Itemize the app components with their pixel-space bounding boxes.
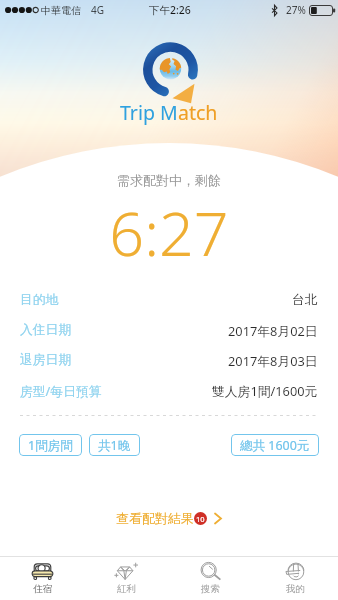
staticText: 房型/每日預算: [20, 382, 102, 399]
staticText: 2017年8月03日: [228, 352, 318, 369]
staticText: 紅利: [117, 583, 136, 595]
staticText: 27%: [286, 3, 306, 17]
staticText: 需求配對中，剩餘: [0, 172, 338, 188]
button[interactable]: 共1晚: [89, 434, 140, 456]
button[interactable]: 總共 1600元: [231, 434, 319, 456]
staticText: 10: [196, 514, 205, 524]
staticText: 目的地: [20, 292, 59, 308]
staticText: 2017年8月02日: [228, 322, 318, 339]
staticText: 1間房間: [28, 437, 73, 454]
staticText: 入住日期: [20, 322, 72, 338]
staticText: 住宿: [33, 583, 52, 595]
staticText: 我的: [286, 583, 305, 595]
staticText: atch: [178, 99, 218, 126]
staticText: 退房日期: [20, 352, 72, 368]
button[interactable]: 1間房間: [19, 434, 82, 456]
staticText: Trip M: [120, 99, 178, 126]
button[interactable]: 搜索: [168, 557, 253, 600]
staticText: 搜索: [201, 583, 220, 595]
staticText: 雙人房1間/1600元: [212, 382, 318, 399]
button[interactable]: 住宿: [0, 557, 84, 600]
staticText: 台北: [292, 292, 318, 308]
staticText: 4G: [91, 3, 104, 17]
staticText: 查看配對結果: [116, 510, 194, 526]
staticText: 中華電信: [41, 4, 81, 17]
button[interactable]: 紅利: [84, 557, 168, 600]
staticText: 下午2:26: [149, 3, 191, 17]
staticText: 總共 1600元: [240, 437, 310, 454]
button[interactable]: 我的: [253, 557, 338, 600]
staticText: 共1晚: [98, 437, 131, 454]
button[interactable]: 查看配對結果: [112, 508, 226, 528]
staticText: 6:27: [0, 191, 338, 274]
